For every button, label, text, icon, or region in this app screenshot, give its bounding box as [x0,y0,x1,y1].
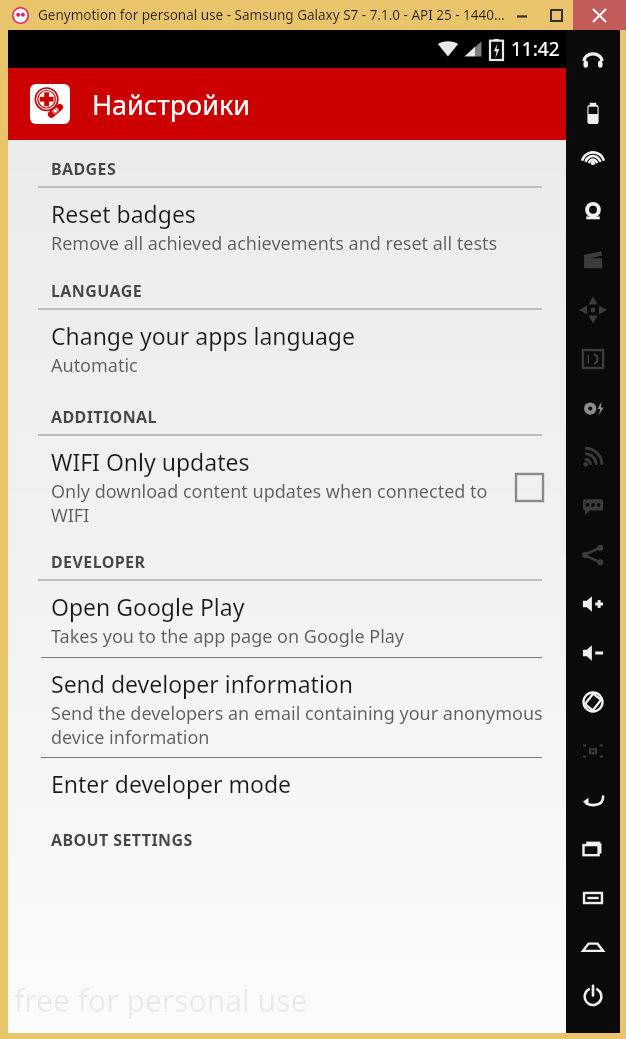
staticText: Remove all achieved achievements and res… [51,231,498,256]
staticText: Send developer information [51,668,353,699]
button[interactable]: Share [566,530,620,579]
button[interactable]: Battery [566,89,620,138]
button[interactable]: Volume up [566,579,620,628]
button[interactable]: Camera [566,187,620,236]
button[interactable]: Scale 1:1 [566,726,620,775]
button[interactable]: Video [566,236,620,285]
staticText: Automatic [51,353,138,378]
button[interactable]: Network [566,432,620,481]
staticText: Open Google Play [51,591,245,622]
button[interactable]: Home [566,922,620,971]
button[interactable]: Menu [566,873,620,922]
button[interactable]: Minimize [505,0,539,30]
staticText: Send the developers an email containing … [51,701,544,749]
button[interactable]: GPS [566,138,620,187]
button[interactable]: Back [566,775,620,824]
staticText: Genymotion for personal use - Samsung Ga… [38,6,505,24]
button[interactable]: Send developer information [8,658,566,757]
button[interactable]: Open Google Play [8,581,566,657]
staticText: LANGUAGE [51,280,143,302]
button[interactable]: GAPPS [566,40,620,89]
staticText: BADGES [51,158,117,180]
staticText: Change your apps language [51,320,355,351]
staticText: Reset badges [51,198,196,229]
staticText: ABOUT SETTINGS [51,829,193,851]
staticText: 11:42 [511,36,560,62]
button[interactable]: WIFI Only updates [8,436,566,535]
button[interactable]: Maximize [539,0,573,30]
button[interactable]: WIFI Only updates checkbox [514,472,544,502]
button[interactable]: Volume down [566,628,620,677]
button[interactable]: Rotate [566,677,620,726]
staticText: Найстройки [92,86,251,123]
button[interactable]: SMS [566,481,620,530]
staticText: ADDITIONAL [51,406,157,428]
button[interactable]: Power [566,971,620,1020]
button[interactable]: Reset badges [8,188,566,264]
button[interactable]: Recents [566,824,620,873]
staticText: Only download content updates when conne… [51,479,504,527]
staticText: Enter developer mode [51,768,292,799]
button[interactable]: Disk IO [566,383,620,432]
staticText: free for personal use [14,980,308,1021]
button[interactable]: Close [573,0,626,30]
button[interactable]: Identifiers [566,334,620,383]
button[interactable]: Enter developer mode [8,758,566,807]
staticText: Takes you to the app page on Google Play [51,624,405,649]
staticText: WIFI Only updates [51,446,250,477]
button[interactable]: App icon [30,84,70,124]
button[interactable]: Change your apps language [8,310,566,386]
button[interactable]: Dpad [566,285,620,334]
staticText: DEVELOPER [51,551,146,573]
